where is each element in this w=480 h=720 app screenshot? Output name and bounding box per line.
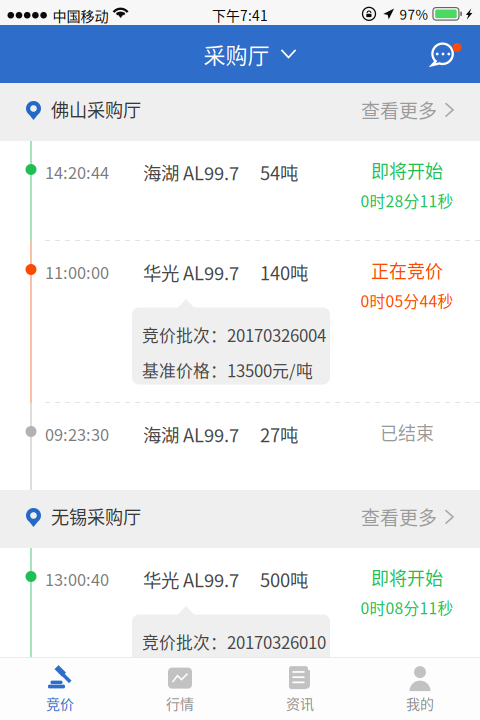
staticText: 11:00:00 [45,260,109,284]
staticText: 资讯 [286,693,314,713]
button[interactable]: 采购厅 [179,29,300,79]
staticText: 佛山采购厅 [51,96,141,122]
staticText: 即将开始 [371,564,443,590]
button[interactable]: 行情 [120,657,240,720]
staticText: 正在竞价 [371,257,443,283]
staticText: 查看更多 [361,503,437,530]
staticText: 行情 [166,693,194,713]
staticText: 华光 AL99.7 [143,566,239,593]
button[interactable]: 查看更多 [353,86,463,133]
button[interactable]: 消息 [426,37,458,71]
staticText: 海湖 AL99.7 [143,421,239,448]
staticText: 中国移动 [52,5,108,25]
staticText: 0时28分11秒 [360,189,453,212]
staticText: 华光 AL99.7 [143,259,239,286]
staticText: 采购厅 [203,38,269,70]
staticText: 54吨 [260,159,298,186]
staticText: 无锡采购厅 [51,503,141,529]
staticText: 竞价 [46,693,74,713]
staticText: 140吨 [260,259,308,286]
staticText: 0时05分44秒 [360,289,453,312]
staticText: 27吨 [260,421,298,448]
staticText: 竞价批次：20170326004 [142,322,326,347]
staticText: 竞价批次：20170326010 [142,629,326,654]
staticText: 0时08分11秒 [360,596,453,619]
staticText: 97% [399,4,428,24]
button[interactable]: 竞价 [0,657,120,720]
staticText: 09:23:30 [45,422,109,446]
staticText: 我的 [406,693,434,713]
button[interactable]: 资讯 [240,657,360,720]
staticText: 14:20:44 [45,160,109,184]
button[interactable]: 我的 [360,657,480,720]
staticText: 已结束 [380,419,434,445]
staticText: 即将开始 [371,157,443,183]
staticText: 基准价格：13480元/吨 [142,665,313,689]
button[interactable]: 查看更多 [353,493,463,540]
staticText: 查看更多 [361,96,437,123]
staticText: 基准价格：13500元/吨 [142,358,313,382]
staticText: 13:00:40 [45,567,109,591]
staticText: 500吨 [260,566,308,593]
staticText: 下午7:41 [212,5,268,25]
staticText: 海湖 AL99.7 [143,159,239,186]
